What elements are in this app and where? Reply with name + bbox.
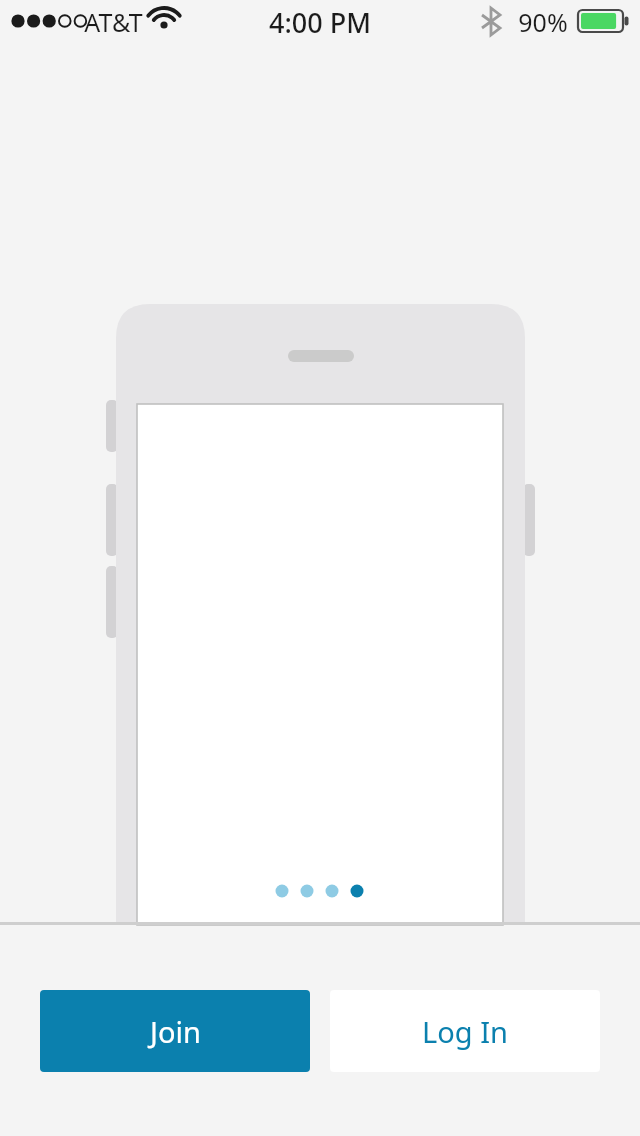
button[interactable]: Log In — [330, 990, 600, 1072]
staticText: 4:00 PM — [269, 4, 371, 41]
staticText: AT&T — [84, 5, 143, 39]
staticText: Log In — [422, 1012, 508, 1051]
staticText: Join — [150, 1012, 201, 1051]
other: App preview carousel — [0, 0, 640, 1136]
staticText: 90% — [518, 5, 568, 39]
button[interactable]: Join — [40, 990, 310, 1072]
